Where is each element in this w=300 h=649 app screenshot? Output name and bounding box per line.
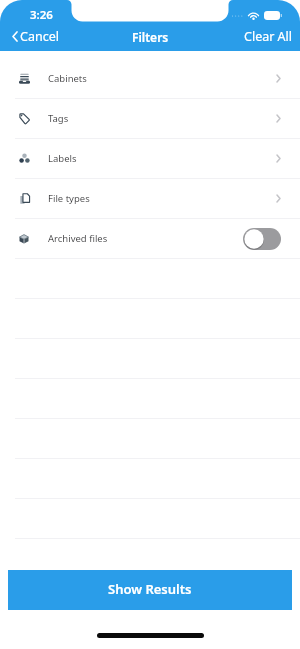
button[interactable]: Archived files toggle [243, 228, 281, 250]
staticText: Filters [132, 29, 169, 45]
staticText: File types [48, 192, 90, 205]
staticText: Cancel [20, 28, 59, 45]
staticText: Labels [48, 152, 77, 165]
button[interactable]: Cancel [0, 24, 69, 49]
button[interactable]: Cabinets [0, 59, 300, 99]
button[interactable]: Tags [0, 99, 300, 139]
button[interactable]: File types [0, 179, 300, 219]
staticText: 3:26 [30, 7, 53, 23]
staticText: Archived files [48, 232, 108, 245]
button[interactable]: Clear All [234, 24, 300, 49]
button[interactable]: Show Results [8, 570, 292, 610]
staticText: Show Results [108, 580, 192, 598]
button[interactable]: Labels [0, 139, 300, 179]
staticText: Tags [48, 112, 69, 125]
staticText: Cabinets [48, 72, 87, 85]
